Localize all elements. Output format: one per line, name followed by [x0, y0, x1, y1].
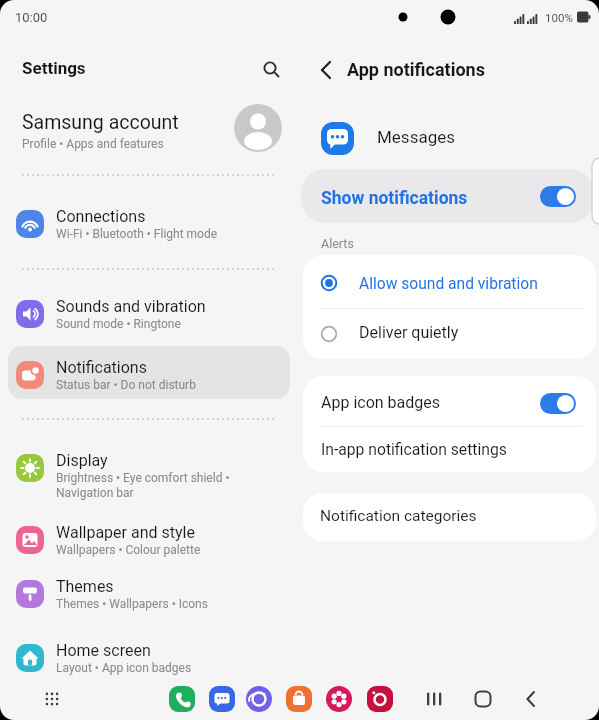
staticText: Navigation bar: [56, 486, 134, 500]
staticText: Wi-Fi • Bluetooth • Flight mode: [56, 227, 218, 241]
button[interactable]: App icon badges: [303, 376, 596, 426]
staticText: Sounds and vibration: [56, 297, 206, 316]
staticText: Wallpaper and style: [56, 523, 195, 542]
button[interactable]: Wallpaper and style: [0, 515, 300, 565]
button[interactable]: Allow sound and vibration: [303, 255, 596, 308]
button[interactable]: [540, 186, 576, 207]
button[interactable]: [521, 689, 541, 709]
staticText: Themes: [56, 577, 114, 596]
staticText: Display: [56, 451, 108, 470]
button[interactable]: Sounds and vibration: [0, 289, 300, 339]
staticText: Deliver quietly: [359, 323, 459, 342]
button[interactable]: [169, 686, 195, 712]
button[interactable]: Themes: [0, 569, 300, 619]
staticText: Brightness • Eye comfort shield •: [56, 471, 230, 485]
staticText: Layout • App icon badges: [56, 661, 192, 675]
button[interactable]: [312, 56, 340, 84]
button[interactable]: Notifications: [0, 350, 300, 400]
staticText: Settings: [22, 58, 86, 78]
staticText: In-app notification settings: [321, 440, 507, 458]
staticText: Profile • Apps and features: [22, 137, 164, 151]
staticText: Allow sound and vibration: [359, 275, 538, 293]
button[interactable]: Display: [0, 443, 300, 499]
staticText: Status bar • Do not disturb: [56, 378, 196, 392]
staticText: Samsung account: [22, 111, 179, 134]
button[interactable]: Home screen: [0, 633, 300, 683]
staticText: Home screen: [56, 641, 151, 660]
staticText: Connections: [56, 207, 146, 226]
button[interactable]: [258, 56, 284, 82]
button[interactable]: [367, 686, 393, 712]
staticText: Messages: [377, 127, 455, 147]
staticText: Notification categories: [320, 507, 477, 525]
staticText: Themes • Wallpapers • Icons: [56, 597, 208, 611]
staticText: Show notifications: [321, 188, 468, 209]
staticText: 100%: [545, 11, 573, 24]
staticText: Alerts: [321, 236, 354, 251]
button[interactable]: Connections: [0, 199, 300, 249]
button[interactable]: [540, 393, 576, 414]
staticText: App icon badges: [321, 393, 441, 412]
staticText: Sound mode • Ringtone: [56, 317, 181, 331]
button[interactable]: [246, 686, 272, 712]
button[interactable]: Notification categories: [303, 493, 596, 541]
button[interactable]: [209, 686, 235, 712]
button[interactable]: Deliver quietly: [303, 309, 596, 359]
button[interactable]: [40, 687, 64, 711]
button[interactable]: In-app notification settings: [303, 427, 596, 472]
button[interactable]: Show notifications: [301, 169, 594, 223]
staticText: 10:00: [15, 10, 48, 25]
staticText: Wallpapers • Colour palette: [56, 543, 201, 557]
staticText: App notifications: [347, 59, 485, 80]
button[interactable]: [473, 689, 493, 709]
staticText: Notifications: [56, 358, 147, 377]
button[interactable]: [424, 689, 444, 709]
button[interactable]: [286, 686, 312, 712]
button[interactable]: Samsung account: [0, 100, 300, 160]
button[interactable]: [326, 686, 352, 712]
